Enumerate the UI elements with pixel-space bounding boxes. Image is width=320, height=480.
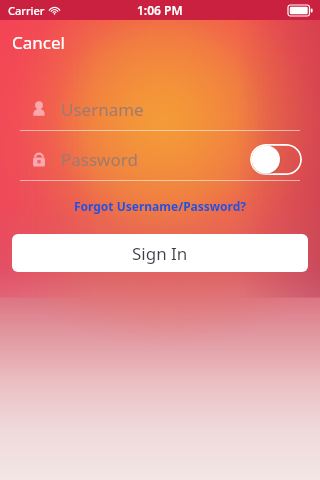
staticText: Carrier xyxy=(8,3,45,18)
staticText: 1:06 PM xyxy=(137,2,183,18)
staticText: Cancel xyxy=(12,31,65,54)
staticText: Sign In xyxy=(132,242,188,265)
staticText: Username xyxy=(61,98,144,121)
button[interactable]: Cancel xyxy=(0,27,75,58)
button[interactable]: Sign In xyxy=(12,234,308,272)
staticText: Forgot Username/Password? xyxy=(0,198,320,214)
button[interactable]: Show password xyxy=(250,144,302,175)
button[interactable]: Password xyxy=(0,138,320,180)
button[interactable]: Forgot Username/Password? xyxy=(0,194,320,218)
staticText: Password xyxy=(61,148,138,171)
button[interactable]: Username xyxy=(0,88,320,130)
